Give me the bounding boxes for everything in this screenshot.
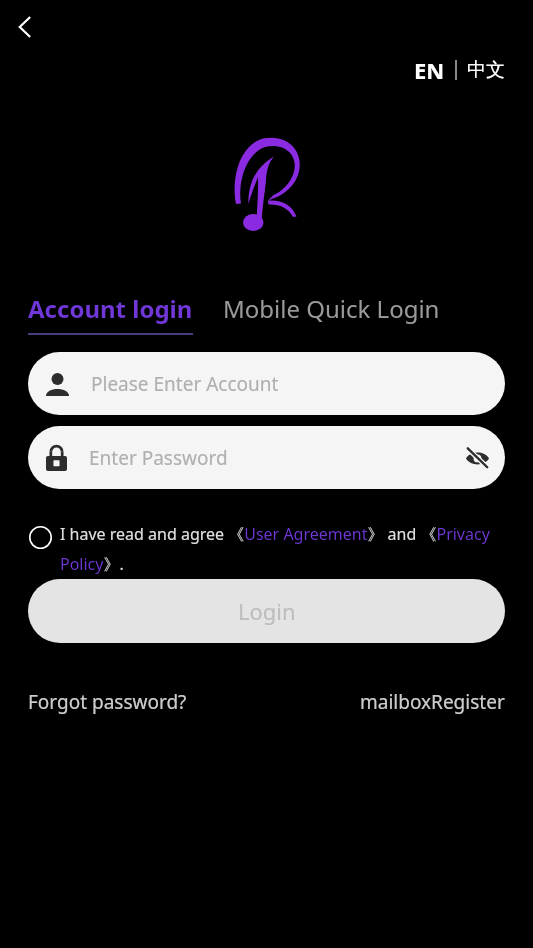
button[interactable]: Show password: [457, 438, 497, 478]
staticText: I have read and agree 《User Agreement》 a…: [60, 523, 509, 575]
button[interactable]: Login: [28, 579, 505, 643]
button[interactable]: Back: [5, 7, 45, 47]
button[interactable]: Forgot password?: [28, 689, 187, 715]
staticText: Account login: [28, 292, 193, 325]
staticText: 中文: [467, 58, 505, 82]
staticText: mailboxRegister: [360, 689, 505, 715]
button[interactable]: EN: [414, 55, 445, 85]
staticText: Mobile Quick Login: [223, 292, 440, 325]
button[interactable]: Agree to terms: [28, 525, 52, 549]
button[interactable]: Mobile Quick Login: [223, 292, 440, 335]
button[interactable]: Account login: [28, 292, 193, 335]
button[interactable]: Please Enter Account: [28, 352, 505, 415]
button[interactable]: 中文: [467, 58, 505, 82]
staticText: Enter Password: [89, 445, 228, 471]
button[interactable]: Enter Password: [28, 426, 505, 489]
staticText: Forgot password?: [28, 689, 187, 715]
staticText: EN: [414, 55, 445, 85]
staticText: Login: [238, 596, 296, 626]
button[interactable]: mailboxRegister: [360, 689, 505, 715]
staticText: Please Enter Account: [91, 371, 279, 397]
